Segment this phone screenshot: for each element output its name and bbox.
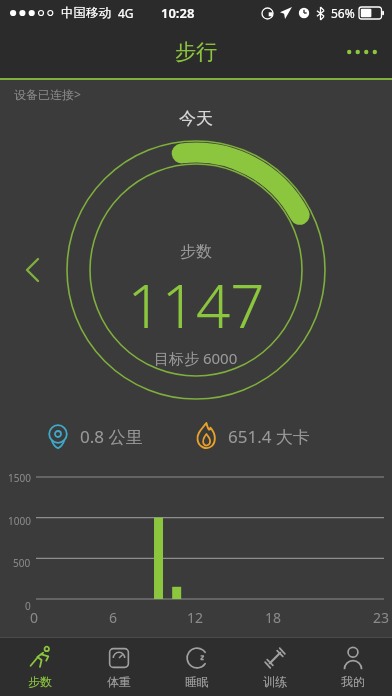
button[interactable]: 我的 — [314, 638, 392, 696]
staticText: 目标步 6000 — [154, 348, 238, 368]
staticText: 体重 — [107, 674, 131, 689]
button[interactable]: 步数 — [0, 638, 79, 696]
staticText: 1500 — [8, 471, 31, 485]
staticText: 今天 — [179, 108, 213, 129]
staticText: 651.4 大卡 — [228, 425, 310, 448]
staticText: 500 — [13, 556, 31, 570]
button[interactable]: Previous day — [14, 252, 50, 288]
staticText: 步行 — [175, 39, 217, 65]
staticText: 设备已连接> — [14, 86, 81, 102]
button[interactable]: 设备已连接> — [14, 86, 81, 102]
staticText: 23 — [373, 608, 390, 627]
staticText: 步数 — [28, 674, 52, 689]
staticText: 4G — [118, 5, 134, 21]
button[interactable]: 651.4 大卡 — [196, 415, 392, 457]
staticText: 0 — [25, 599, 31, 613]
staticText: 18 — [265, 608, 282, 627]
staticText: 1000 — [8, 514, 31, 528]
staticText: 睡眠 — [185, 674, 209, 689]
staticText: 0.8 公里 — [80, 425, 143, 448]
button[interactable]: 训练 — [236, 638, 314, 696]
staticText: 10:28 — [161, 4, 195, 22]
staticText: 步数 — [180, 242, 212, 262]
button[interactable]: 体重 — [79, 638, 158, 696]
staticText: 1147 — [127, 264, 265, 346]
staticText: 中国移动 — [61, 5, 111, 21]
staticText: 56% — [331, 5, 355, 21]
button[interactable]: 0.8 公里 — [0, 415, 196, 457]
staticText: 训练 — [263, 674, 287, 689]
staticText: 我的 — [341, 674, 365, 689]
staticText: 12 — [187, 608, 204, 627]
button[interactable]: 睡眠 — [158, 638, 236, 696]
staticText: 6 — [109, 608, 118, 627]
button[interactable]: More options — [340, 30, 384, 74]
staticText: 0 — [30, 608, 39, 627]
